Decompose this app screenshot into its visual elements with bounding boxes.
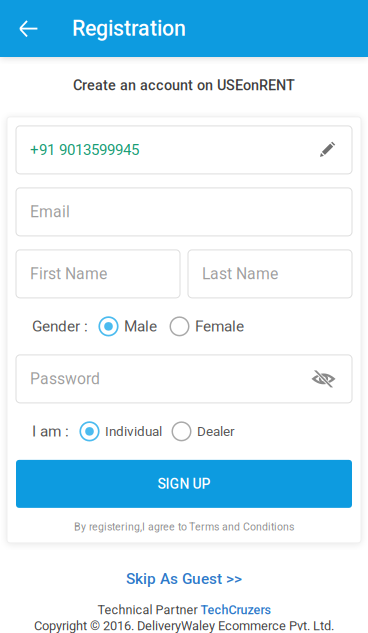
staticText: Gender : [32, 317, 88, 335]
staticText: Password [30, 370, 100, 388]
staticText: Female [195, 317, 244, 335]
staticText: I am : [32, 422, 69, 440]
staticText: Skip As Guest >> [126, 570, 242, 588]
button[interactable]: Back [0, 0, 57, 57]
staticText: Copyright © 2016. DeliveryWaley Ecommerc… [34, 618, 334, 633]
staticText: Individual [105, 423, 162, 439]
button[interactable]: Individual [80, 417, 162, 446]
staticText: Last Name [202, 265, 278, 283]
staticText: Technical Partner [97, 602, 197, 617]
staticText: First Name [30, 265, 107, 283]
button[interactable]: SIGN UP [16, 460, 352, 508]
staticText: TechCruzers [200, 602, 270, 617]
staticText: Email [30, 203, 70, 221]
staticText: SIGN UP [157, 476, 210, 492]
button[interactable]: Female [170, 312, 244, 341]
button[interactable]: Edit phone number [320, 142, 336, 158]
staticText: +91 9013599945 [30, 141, 139, 159]
staticText: Create an account on USEonRENT [73, 77, 295, 94]
button[interactable]: Show password [311, 370, 336, 387]
staticText: Dealer [197, 423, 235, 439]
button[interactable]: Dealer [172, 417, 235, 446]
button[interactable]: Skip As Guest >> [0, 562, 368, 596]
staticText: Registration [72, 16, 186, 41]
button[interactable]: TechCruzers [200, 602, 270, 617]
staticText: Male [124, 317, 157, 335]
staticText: By registering,I agree to Terms and Cond… [74, 521, 294, 533]
button[interactable]: Male [99, 312, 157, 341]
